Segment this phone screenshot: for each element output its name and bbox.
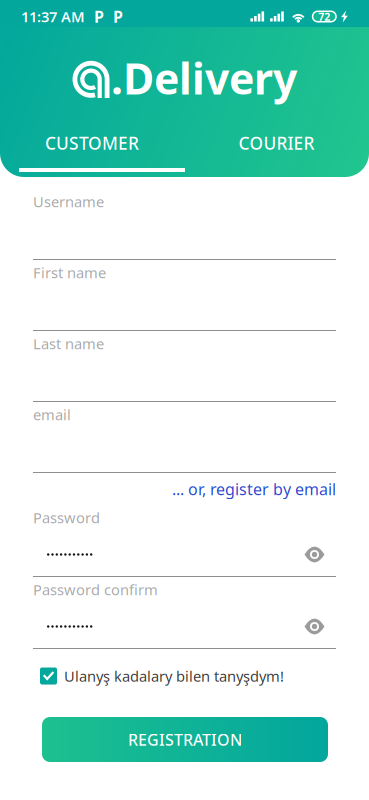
- staticText: Ulanyş kadalary bilen tanyşdym!: [64, 666, 284, 686]
- staticText: REGISTRATION: [128, 729, 242, 750]
- staticText: .Delivery: [111, 50, 297, 106]
- staticText: CUSTOMER: [45, 131, 139, 154]
- button[interactable]: Show password: [304, 619, 325, 633]
- button[interactable]: ... or, register by email: [172, 473, 336, 505]
- staticText: email: [33, 405, 71, 424]
- staticText: P: [113, 6, 123, 27]
- button[interactable]: COURIER: [184, 132, 369, 154]
- staticText: P: [94, 6, 104, 27]
- button[interactable]: REGISTRATION: [41, 717, 327, 762]
- button[interactable]: Ulanyş kadalary bilen tanyşdym!: [33, 667, 336, 685]
- staticText: Username: [33, 192, 104, 211]
- staticText: Last name: [33, 334, 104, 353]
- staticText: COURIER: [238, 131, 314, 154]
- staticText: 11:37 AM: [21, 7, 85, 26]
- button[interactable]: Show password: [304, 547, 325, 561]
- staticText: ... or, register by email: [172, 478, 336, 500]
- staticText: 72: [318, 9, 330, 24]
- staticText: First name: [33, 263, 106, 282]
- staticText: Password confirm: [33, 580, 158, 599]
- button[interactable]: CUSTOMER: [0, 132, 184, 154]
- staticText: Password: [33, 508, 100, 527]
